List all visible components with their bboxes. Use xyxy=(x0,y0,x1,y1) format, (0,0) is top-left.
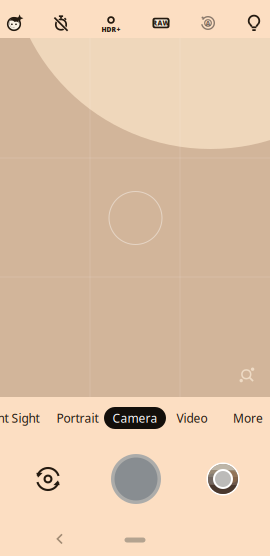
staticText: HDR+ xyxy=(101,25,120,34)
button[interactable]: Camera xyxy=(104,407,166,429)
staticText: Camera xyxy=(112,410,157,426)
staticText: More xyxy=(233,410,263,426)
button[interactable]: Night Sight xyxy=(0,401,40,435)
button[interactable]: Switch camera xyxy=(24,455,72,503)
button[interactable]: RAW capture xyxy=(145,7,177,39)
button[interactable]: Face retouching xyxy=(0,7,31,39)
button[interactable]: Portrait xyxy=(46,401,108,435)
button[interactable]: HDR plus on xyxy=(95,7,127,39)
button[interactable]: Video xyxy=(161,401,223,435)
button[interactable]: Photo gallery xyxy=(203,459,243,499)
staticText: A xyxy=(205,19,210,28)
button[interactable]: Timer off xyxy=(45,7,77,39)
staticText: Video xyxy=(176,410,207,426)
button[interactable]: Home xyxy=(113,526,156,553)
button[interactable]: Search with Lens xyxy=(230,358,264,392)
button[interactable]: White balance auto xyxy=(192,7,224,39)
button[interactable]: Flash off xyxy=(238,7,270,39)
staticText: Night Sight xyxy=(0,410,39,426)
staticText: RAW xyxy=(152,19,169,27)
staticText: Portrait xyxy=(56,410,98,426)
button[interactable]: More xyxy=(217,401,270,435)
button[interactable]: Back xyxy=(43,521,77,556)
button[interactable]: Take photo xyxy=(106,449,166,509)
